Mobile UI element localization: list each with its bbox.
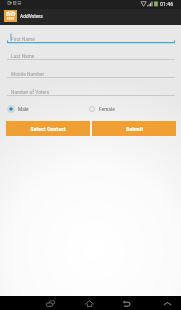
button[interactable]: Male — [6, 104, 82, 114]
button[interactable]: Submit — [92, 121, 176, 136]
button[interactable]: Last Name — [7, 46, 175, 60]
staticText: Male — [18, 106, 29, 112]
staticText: Number of Voters — [11, 89, 50, 95]
button[interactable]: Number of Voters — [7, 82, 175, 96]
staticText: Last Name — [11, 53, 35, 59]
staticText: Mobile Number — [11, 71, 45, 77]
button[interactable]: Mobile Number — [7, 64, 175, 78]
button[interactable]: Recent apps — [39, 296, 61, 310]
staticText: Submit — [126, 125, 143, 132]
button[interactable]: Home — [78, 296, 100, 310]
staticText: Select Contact — [30, 125, 66, 132]
button[interactable]: Hide navigation bar — [156, 296, 178, 310]
button[interactable]: Select Contact — [6, 121, 90, 136]
staticText: AddVoters — [20, 13, 43, 19]
button[interactable]: App icon — [4, 10, 17, 22]
staticText: First Name — [11, 36, 35, 42]
button[interactable]: Back — [115, 296, 137, 310]
button[interactable]: Female — [87, 104, 167, 114]
button[interactable]: First Name — [7, 29, 175, 43]
staticText: Female — [99, 106, 115, 112]
staticText: 01:46 — [160, 0, 174, 7]
